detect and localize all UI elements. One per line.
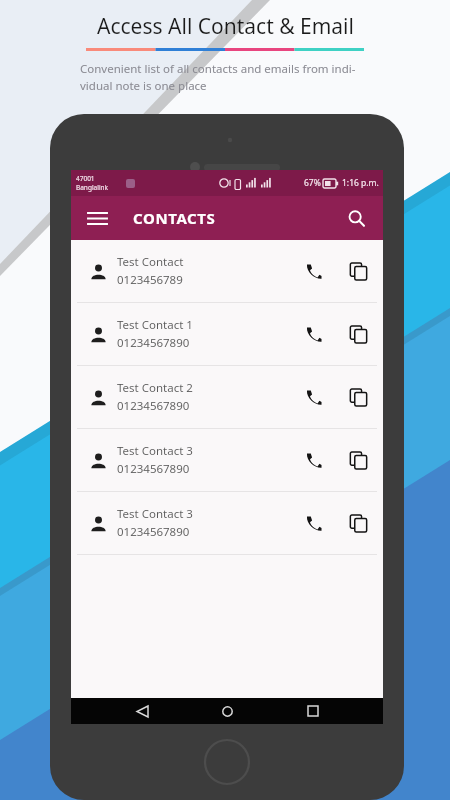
button[interactable]: Search [341, 203, 371, 233]
button[interactable]: Copy 0123456789 [341, 254, 375, 288]
button[interactable]: Home [212, 698, 242, 724]
button[interactable]: Copy 01234567890 [341, 380, 375, 414]
button[interactable]: Open navigation menu [71, 196, 383, 240]
button[interactable]: Test Contact [71, 240, 383, 303]
button[interactable]: Open navigation menu [83, 204, 111, 232]
staticText: 0123456789 [117, 272, 183, 288]
staticText: 01234567890 [117, 398, 190, 414]
staticText: 47001 [76, 174, 95, 183]
staticText: 1:16 p.m. [342, 177, 379, 189]
button[interactable]: Call Test Contact 3 [297, 443, 331, 477]
staticText: Test Contact 3 [117, 506, 193, 522]
button[interactable]: Copy 01234567890 [341, 506, 375, 540]
staticText: Test Contact 1 [117, 317, 193, 333]
button[interactable]: Call Test Contact 2 [297, 380, 331, 414]
button[interactable]: Copy 01234567890 [341, 443, 375, 477]
staticText: 67% [304, 177, 321, 189]
staticText: Convenient list of all contacts and emai… [80, 61, 356, 93]
staticText: 01234567890 [117, 524, 190, 540]
button[interactable]: Call Test Contact [297, 254, 331, 288]
button[interactable]: Test Contact 2 [71, 366, 383, 429]
button[interactable]: Back [127, 698, 157, 724]
button[interactable]: Call Test Contact 1 [297, 317, 331, 351]
staticText: Test Contact 3 [117, 443, 193, 459]
staticText: 01234567890 [117, 461, 190, 477]
staticText: Access All Contact & Email [97, 12, 354, 41]
staticText: Test Contact [117, 254, 184, 270]
button[interactable]: Recent apps [298, 698, 328, 724]
staticText: 01234567890 [117, 335, 190, 351]
staticText: Banglalink [76, 183, 109, 192]
staticText: CONTACTS [133, 208, 216, 228]
button[interactable]: Test Contact 1 [71, 303, 383, 366]
button[interactable]: Test Contact 3 [71, 492, 383, 555]
button[interactable]: Copy 01234567890 [341, 317, 375, 351]
staticText: Test Contact 2 [117, 380, 193, 396]
button[interactable]: Test Contact 3 [71, 429, 383, 492]
button[interactable]: Call Test Contact 3 [297, 506, 331, 540]
